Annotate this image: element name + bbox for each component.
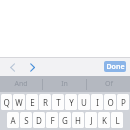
staticText: E bbox=[30, 97, 35, 108]
staticText: S bbox=[24, 115, 29, 126]
button[interactable]: L bbox=[111, 112, 123, 128]
staticText: And bbox=[14, 79, 28, 89]
button[interactable]: E bbox=[26, 94, 38, 110]
staticText: G bbox=[62, 115, 68, 126]
staticText: R bbox=[43, 97, 48, 108]
button[interactable]: O bbox=[104, 94, 116, 110]
staticText: In bbox=[61, 79, 68, 89]
button[interactable]: Previous field bbox=[4, 58, 20, 76]
button[interactable]: W bbox=[13, 94, 25, 110]
staticText: T bbox=[56, 97, 61, 108]
button[interactable]: D bbox=[33, 112, 45, 128]
button[interactable]: And bbox=[0, 76, 42, 92]
button[interactable]: Next field bbox=[24, 58, 40, 76]
staticText: A bbox=[10, 115, 16, 126]
button[interactable]: P bbox=[117, 94, 129, 110]
button[interactable]: Of bbox=[87, 76, 130, 92]
staticText: Q bbox=[3, 97, 10, 108]
staticText: W bbox=[15, 97, 23, 108]
button[interactable]: J bbox=[85, 112, 97, 128]
button[interactable]: S bbox=[20, 112, 32, 128]
button[interactable]: Y bbox=[65, 94, 77, 110]
button[interactable]: F bbox=[46, 112, 58, 128]
staticText: Y bbox=[69, 97, 74, 108]
staticText: Done bbox=[106, 62, 125, 72]
staticText: I bbox=[96, 97, 99, 108]
staticText: U bbox=[81, 97, 87, 108]
button[interactable]: K bbox=[98, 112, 110, 128]
button[interactable]: Q bbox=[1, 94, 12, 110]
staticText: H bbox=[75, 115, 81, 126]
staticText: O bbox=[107, 97, 114, 108]
staticText: F bbox=[50, 115, 55, 126]
button[interactable]: G bbox=[59, 112, 71, 128]
button[interactable]: Done bbox=[104, 61, 126, 72]
staticText: Of bbox=[105, 79, 113, 89]
button[interactable]: I bbox=[91, 94, 103, 110]
button[interactable]: R bbox=[39, 94, 51, 110]
staticText: L bbox=[115, 115, 120, 126]
staticText: J bbox=[90, 115, 93, 126]
staticText: P bbox=[121, 97, 126, 108]
button[interactable]: A bbox=[7, 112, 19, 128]
button[interactable]: U bbox=[78, 94, 90, 110]
button[interactable]: T bbox=[52, 94, 64, 110]
staticText: D bbox=[36, 115, 42, 126]
staticText: K bbox=[102, 115, 107, 126]
button[interactable]: In bbox=[43, 76, 86, 92]
button[interactable]: H bbox=[72, 112, 84, 128]
